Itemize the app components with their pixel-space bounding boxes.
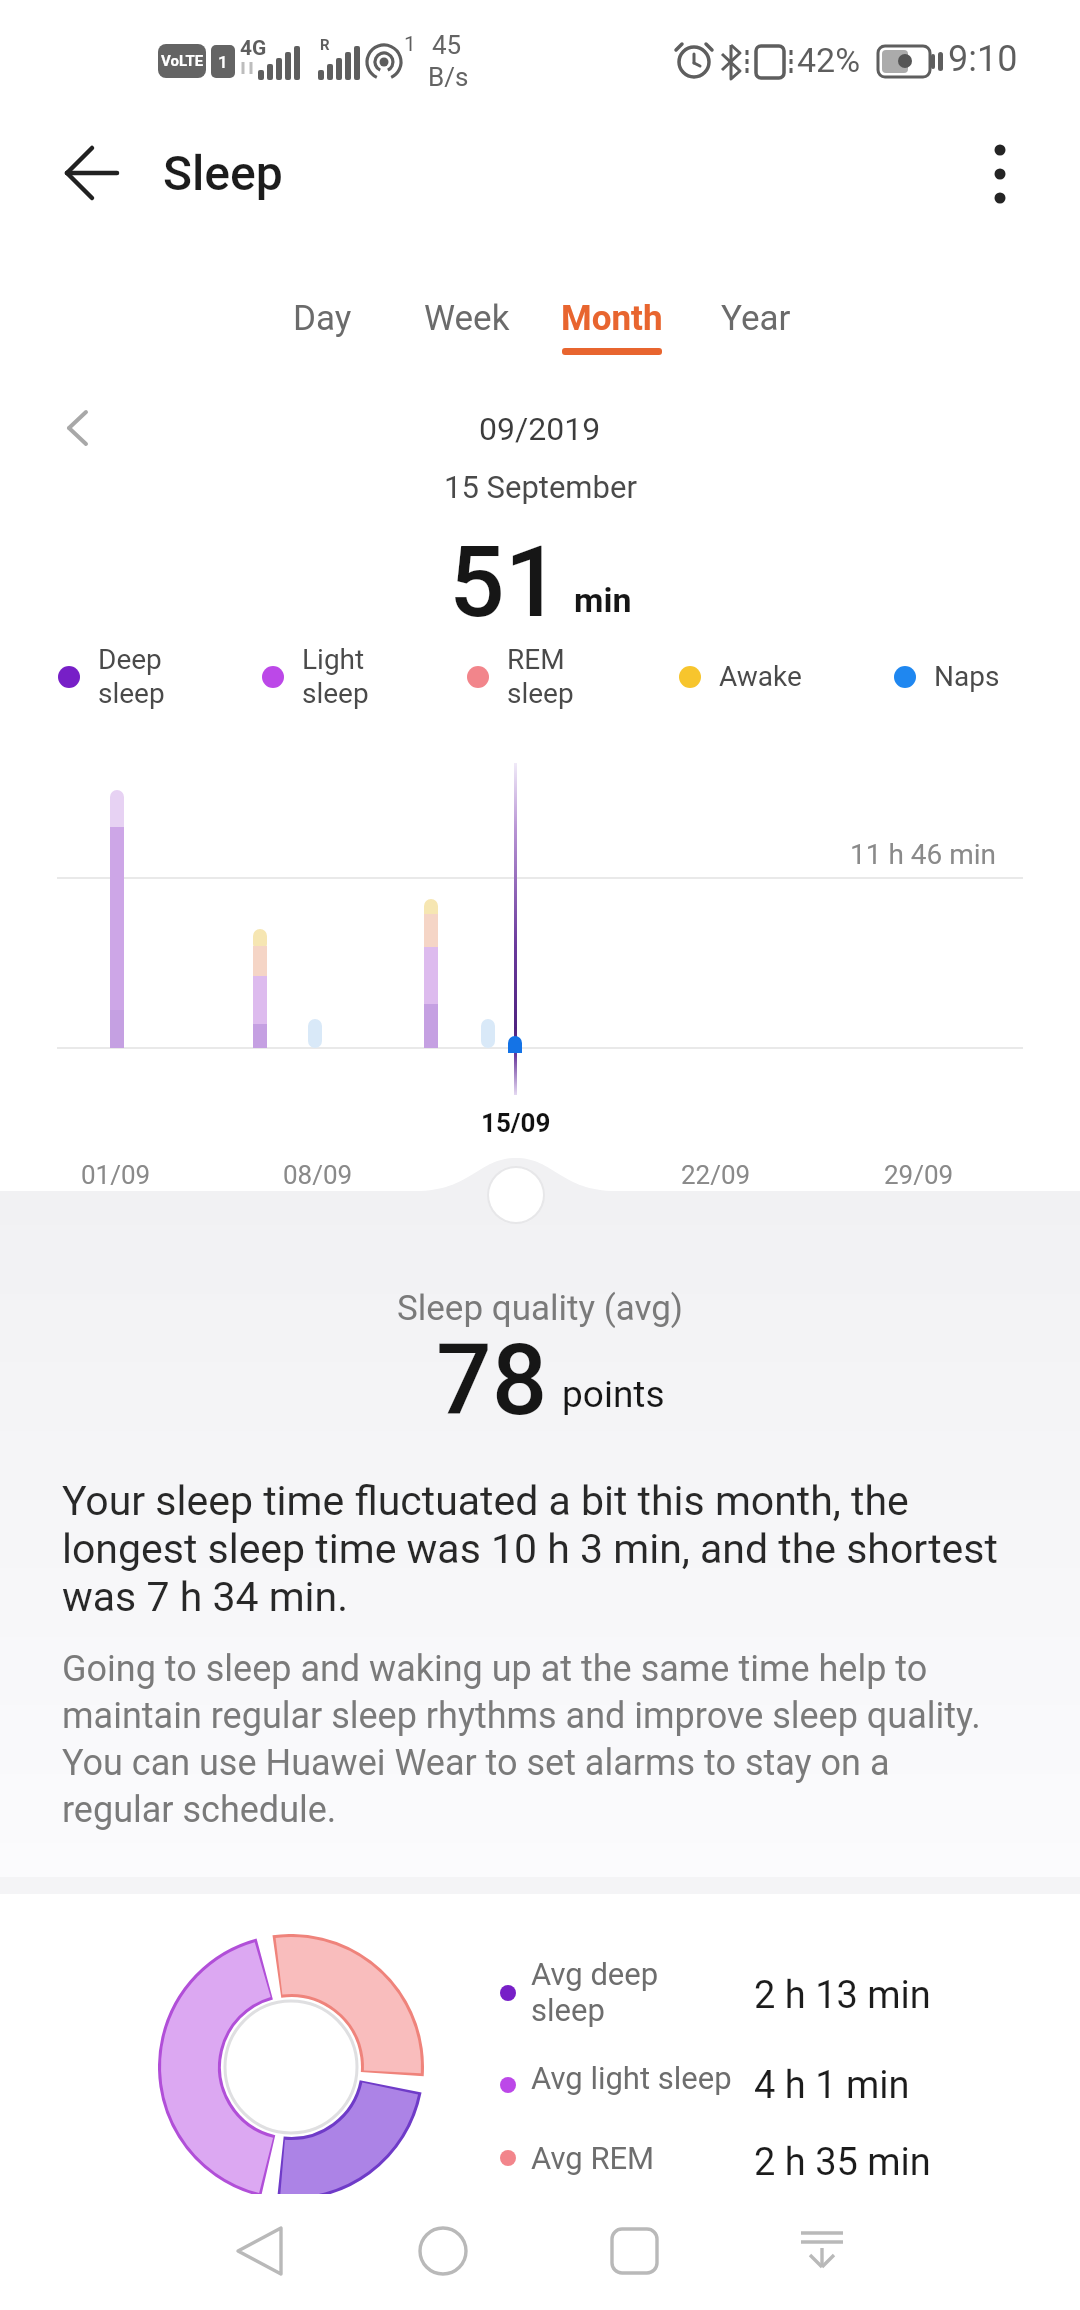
staticText: min (574, 580, 632, 620)
staticText: 15/09 (481, 1108, 551, 1138)
staticText: 2 h 13 min (754, 1973, 931, 2018)
staticText: Year (721, 298, 791, 339)
button[interactable] (975, 140, 1025, 210)
staticText: Sleep quality (avg) (397, 1288, 684, 1329)
staticText: 15 September (444, 469, 637, 505)
staticText: Your sleep time fluctuated a bit this mo… (62, 1477, 998, 1621)
staticText: 08/09 (283, 1160, 353, 1190)
button[interactable] (385, 2210, 505, 2300)
staticText: Going to sleep and waking up at the same… (62, 1648, 981, 1831)
button[interactable]: Week (395, 286, 539, 350)
staticText: Day (293, 298, 352, 339)
button[interactable]: Year (684, 286, 828, 350)
staticText: Light sleep (302, 643, 369, 710)
staticText: points (562, 1373, 665, 1416)
button[interactable] (58, 141, 122, 205)
button[interactable] (200, 2210, 320, 2300)
staticText: VoLTE (161, 52, 204, 70)
staticText: 01/09 (81, 1160, 151, 1190)
button[interactable]: Month (540, 286, 684, 350)
staticText: Naps (934, 660, 1000, 693)
button[interactable] (575, 2210, 695, 2300)
staticText: Deep sleep (98, 643, 165, 710)
staticText: 29/09 (884, 1160, 954, 1190)
staticText: Week (424, 298, 510, 339)
button[interactable] (762, 2210, 882, 2300)
staticText: 45 (432, 30, 462, 60)
staticText: 22/09 (681, 1160, 751, 1190)
staticText: Sleep (163, 145, 283, 201)
staticText: Avg deep sleep (531, 1956, 659, 2029)
staticText: Avg REM (531, 2140, 655, 2176)
staticText: Avg light sleep (531, 2060, 732, 2096)
staticText: Month (561, 298, 663, 339)
staticText: 1 (218, 52, 228, 72)
staticText: 42% (797, 40, 861, 80)
staticText: 2 h 35 min (754, 2140, 931, 2185)
button[interactable] (58, 406, 102, 450)
staticText: 78 (436, 1323, 548, 1438)
staticText: Awake (719, 660, 802, 693)
button[interactable]: Day (250, 286, 394, 350)
staticText: 9:10 (948, 38, 1018, 80)
staticText: 4G (240, 36, 267, 61)
staticText: R (320, 36, 330, 54)
staticText: 51 (449, 525, 561, 640)
staticText: REM sleep (507, 643, 574, 710)
staticText: 11 h 46 min (850, 838, 997, 871)
staticText: 4 h 1 min (754, 2063, 910, 2108)
staticText: 1 (404, 32, 416, 57)
staticText: 09/2019 (479, 410, 601, 448)
staticText: B/s (428, 62, 469, 92)
